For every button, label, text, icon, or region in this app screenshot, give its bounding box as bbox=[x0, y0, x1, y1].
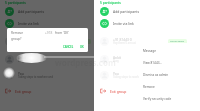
button[interactable]: Ankit bbox=[0, 54, 94, 64]
button[interactable]: Remove bbox=[139, 81, 188, 93]
staticText: 5 participants bbox=[5, 1, 26, 5]
staticText: Group admin bbox=[74, 40, 89, 43]
staticText: 5 participants bbox=[100, 1, 121, 5]
button[interactable]: Verify security code bbox=[139, 93, 188, 103]
staticText: Taking steps to nowhere and bbox=[18, 75, 53, 79]
button[interactable]: View 81443... bbox=[139, 57, 188, 69]
button[interactable]: Dismiss as admin bbox=[139, 69, 188, 81]
button[interactable]: +91 81443 0 bbox=[0, 36, 94, 46]
staticText: Add participants bbox=[18, 9, 45, 14]
staticText: Exit group bbox=[110, 89, 127, 94]
staticText: Busy bbox=[18, 59, 24, 63]
staticText: Exit group bbox=[15, 89, 32, 94]
button[interactable]: Add participants bbox=[95, 7, 190, 16]
staticText: group? bbox=[11, 37, 22, 41]
button[interactable]: OK bbox=[80, 45, 84, 49]
staticText: from 'OK' bbox=[55, 31, 69, 35]
staticText: Message bbox=[143, 49, 156, 53]
button[interactable]: Exit group bbox=[95, 86, 190, 96]
staticText: Ankit bbox=[18, 55, 26, 59]
button[interactable]: You bbox=[0, 70, 94, 80]
staticText: +91 81443 0 bbox=[113, 37, 132, 41]
staticText: Invite via link bbox=[113, 21, 134, 26]
staticText: Busy bbox=[113, 59, 119, 63]
staticText: +918 bbox=[45, 31, 53, 35]
staticText: Verify security code bbox=[143, 97, 172, 101]
staticText: wordpress.com bbox=[55, 57, 116, 68]
button[interactable]: +91 81443 0 bbox=[95, 36, 190, 46]
button[interactable]: CANCEL bbox=[63, 45, 74, 49]
staticText: Add participants bbox=[113, 9, 140, 14]
button[interactable]: Add participants bbox=[0, 7, 94, 16]
staticText: Group admin bbox=[170, 40, 185, 43]
button[interactable]: Invite via link bbox=[0, 19, 94, 28]
button[interactable]: You bbox=[95, 70, 190, 80]
staticText: Dismiss as admin bbox=[143, 73, 169, 77]
button[interactable]: Invite via link bbox=[95, 19, 190, 28]
staticText: Remove bbox=[143, 85, 155, 89]
staticText: You bbox=[18, 71, 24, 75]
staticText: View 81443... bbox=[143, 61, 162, 65]
staticText: Hey there! I am usi bbox=[113, 41, 136, 45]
button[interactable]: Ankit bbox=[95, 54, 190, 64]
staticText: Remove bbox=[11, 31, 24, 35]
staticText: Taking steps to nowhere and bbox=[113, 75, 148, 79]
staticText: You bbox=[113, 71, 119, 75]
staticText: Ankit bbox=[113, 55, 121, 59]
staticText: Invite via link bbox=[18, 21, 39, 26]
staticText: +91 81443 0 bbox=[18, 37, 37, 41]
button[interactable]: Exit group bbox=[0, 86, 94, 96]
button[interactable]: Message bbox=[139, 45, 188, 57]
